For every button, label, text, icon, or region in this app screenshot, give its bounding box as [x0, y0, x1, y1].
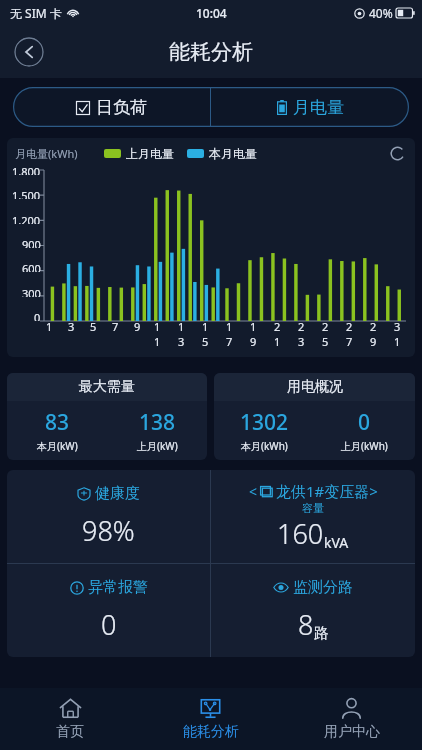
staticText: 路	[314, 624, 329, 643]
staticText: 上月(kW)	[137, 439, 178, 453]
staticText: 异常报警	[88, 578, 148, 597]
staticText: 17	[226, 319, 238, 349]
staticText: 138	[139, 408, 176, 437]
staticText: 21	[274, 319, 286, 349]
staticText: 8	[298, 606, 314, 643]
staticText: 月电量	[293, 97, 344, 118]
staticText: 25	[322, 319, 334, 349]
staticText: 3	[68, 319, 75, 334]
staticText: 15	[202, 319, 214, 349]
staticText: 0	[358, 408, 371, 437]
staticText: 7	[112, 319, 119, 334]
staticText: 1302	[240, 408, 289, 437]
staticText: 9	[134, 319, 141, 334]
staticText: 300	[22, 286, 41, 297]
staticText: 最大需量	[79, 378, 135, 396]
button[interactable]: 用电概况	[214, 373, 415, 460]
staticText: 29	[370, 319, 382, 349]
staticText: 19	[250, 319, 262, 349]
staticText: 13	[178, 319, 190, 349]
staticText: 40%	[369, 5, 393, 21]
staticText: 日负荷	[96, 97, 147, 118]
staticText: 龙供1#变压器>	[276, 481, 378, 501]
staticText: 0	[101, 606, 117, 643]
staticText: 首页	[56, 723, 84, 741]
button[interactable]: 能耗分析	[140, 688, 281, 750]
staticText: 上月电量	[126, 146, 174, 161]
staticText: 31	[394, 319, 406, 349]
staticText: 23	[298, 319, 310, 349]
staticText: 900	[22, 237, 41, 248]
button[interactable]: Refresh	[388, 144, 406, 162]
staticText: 600	[22, 261, 41, 272]
button[interactable]: 首页	[0, 688, 140, 750]
staticText: 5	[90, 319, 97, 334]
staticText: 无 SIM 卡	[10, 5, 62, 21]
button[interactable]: 日负荷	[13, 87, 210, 127]
staticText: 11	[154, 319, 166, 349]
staticText: 10:04	[196, 5, 227, 21]
staticText: 1,500	[12, 188, 41, 199]
staticText: 1	[46, 319, 53, 334]
staticText: kVA	[324, 533, 349, 552]
staticText: 用电概况	[287, 378, 343, 396]
button[interactable]: 健康度	[7, 470, 210, 563]
button[interactable]: 月电量	[211, 87, 409, 127]
staticText: 本月(kW)	[37, 439, 78, 453]
staticText: 本月电量	[209, 146, 257, 161]
button[interactable]: 异常报警	[7, 564, 210, 657]
button[interactable]: 用户中心	[281, 688, 422, 750]
staticText: 83	[45, 408, 70, 437]
button[interactable]: <	[211, 470, 415, 563]
button[interactable]: 最大需量	[7, 373, 207, 460]
staticText: 0	[34, 310, 41, 321]
staticText: 1,800	[12, 164, 41, 175]
staticText: 月电量(kWh)	[15, 146, 78, 161]
staticText: 1,200	[12, 213, 41, 224]
staticText: 能耗分析	[169, 39, 253, 65]
staticText: 160	[277, 515, 324, 552]
staticText: <	[249, 482, 258, 501]
button[interactable]: 监测分路	[211, 564, 415, 657]
staticText: 监测分路	[293, 578, 353, 597]
staticText: 能耗分析	[183, 723, 239, 741]
staticText: 本月(kWh)	[241, 439, 288, 453]
staticText: 容量	[302, 501, 324, 515]
button[interactable]: Back	[14, 37, 44, 67]
staticText: 上月(kWh)	[341, 439, 388, 453]
staticText: 98%	[82, 512, 135, 549]
staticText: 用户中心	[324, 723, 380, 741]
staticText: 健康度	[95, 484, 140, 503]
staticText: 27	[346, 319, 358, 349]
